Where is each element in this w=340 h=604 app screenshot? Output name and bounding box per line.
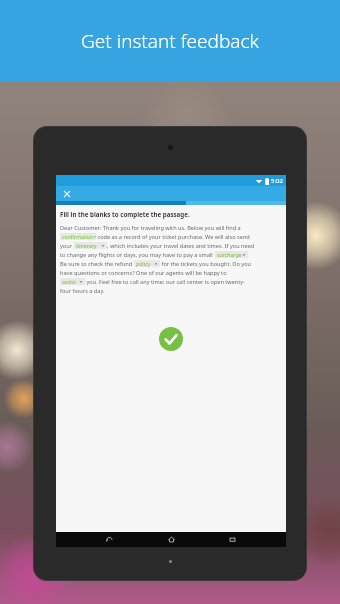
button[interactable]: Recents (225, 532, 240, 547)
staticText: assist (62, 278, 76, 285)
button[interactable]: Home (164, 532, 179, 547)
staticText: four hours a day. (60, 287, 105, 295)
button[interactable]: itinerary (74, 242, 107, 249)
staticText: , which includes your travel dates and t… (107, 242, 255, 250)
staticText: Get instant feedback (81, 28, 259, 54)
staticText: your (60, 242, 74, 250)
staticText: Be sure to check the refund (60, 260, 134, 268)
button[interactable]: confirmation (60, 233, 96, 240)
button[interactable]: policy (134, 260, 160, 267)
staticText: confirmation (62, 233, 94, 240)
button[interactable]: Close (62, 189, 72, 199)
staticText: code as a record of your ticket purchase… (96, 233, 250, 241)
staticText: to change any flights or days, you may h… (60, 251, 215, 259)
staticText: policy (136, 260, 151, 267)
staticText: Dear Customer: Thank you for traveling w… (60, 224, 241, 232)
button[interactable]: surcharge (215, 251, 248, 258)
staticText: for the tickets you bought. Do you (160, 260, 251, 268)
staticText: 5:02 (271, 177, 283, 185)
button[interactable]: Back (102, 532, 117, 547)
staticText: surcharge (217, 251, 242, 258)
staticText: have questions or concerns? One of our a… (60, 269, 227, 277)
button[interactable]: Close (56, 186, 286, 201)
button[interactable]: assist (60, 278, 85, 285)
staticText: Fill in the blanks to complete the passa… (60, 210, 190, 218)
button[interactable]: Correct (159, 327, 183, 351)
staticText: you. Feel free to call any time; our cal… (85, 278, 245, 286)
staticText: itinerary (76, 242, 97, 249)
